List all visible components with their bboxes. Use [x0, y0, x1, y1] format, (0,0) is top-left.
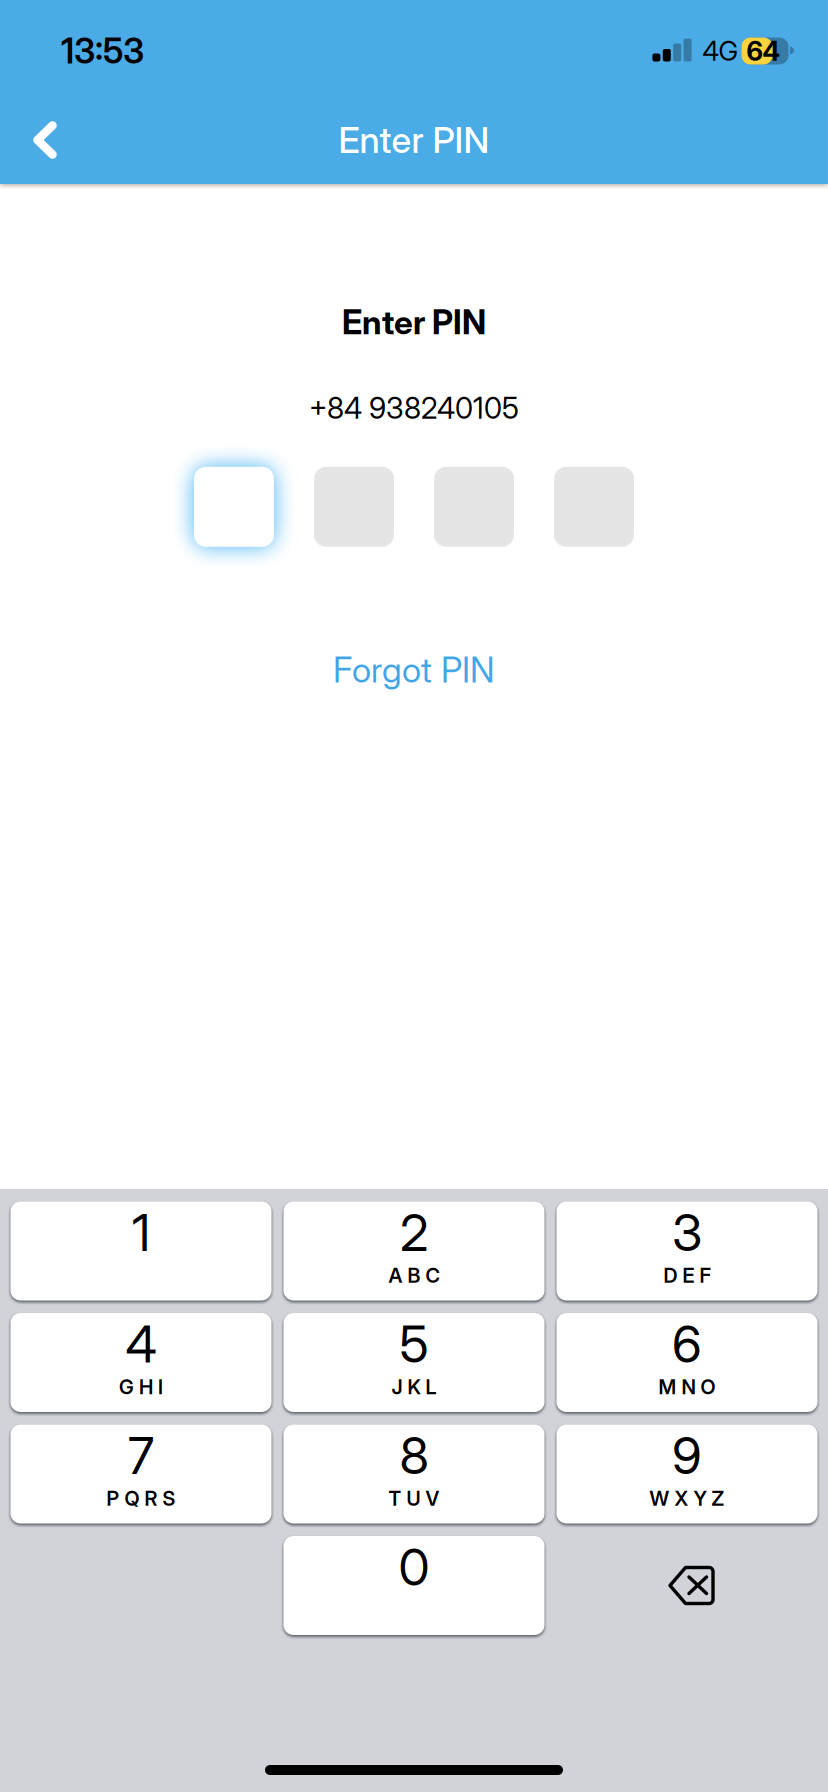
button[interactable]: Forgot PIN	[294, 648, 534, 692]
staticText: 4G	[702, 35, 737, 67]
button[interactable]: 0	[283, 1536, 544, 1635]
staticText: 7	[128, 1425, 154, 1486]
staticText: 5	[399, 1313, 428, 1375]
button[interactable]: Back	[0, 92, 90, 188]
staticText: 9	[672, 1425, 702, 1486]
staticText: 64	[746, 35, 780, 67]
button[interactable]: 6	[556, 1313, 817, 1412]
staticText: Forgot PIN	[333, 649, 495, 691]
staticText: P Q R S	[106, 1486, 175, 1510]
staticText: +84 938240105	[309, 390, 519, 426]
button[interactable]: 8	[283, 1424, 544, 1523]
staticText: D E F	[663, 1263, 710, 1287]
button[interactable]: Delete	[556, 1536, 817, 1635]
staticText: 8	[399, 1425, 428, 1486]
button[interactable]: 3	[556, 1201, 817, 1300]
staticText: T U V	[388, 1486, 439, 1510]
button[interactable]: 5	[283, 1313, 544, 1412]
staticText: J K L	[391, 1375, 436, 1399]
button[interactable]: 1	[10, 1201, 271, 1300]
staticText: 2	[400, 1202, 428, 1263]
button[interactable]: 9	[556, 1424, 817, 1523]
button[interactable]: 4	[10, 1313, 271, 1412]
staticText: Enter PIN	[342, 302, 486, 342]
staticText: Enter PIN	[338, 118, 489, 162]
staticText: 6	[672, 1313, 702, 1375]
button[interactable]: 2	[283, 1201, 544, 1300]
button[interactable]: 7	[10, 1424, 271, 1523]
staticText: 4	[125, 1313, 156, 1375]
staticText: 1	[132, 1202, 150, 1263]
staticText: G H I	[119, 1375, 163, 1399]
staticText: A B C	[388, 1263, 439, 1287]
staticText: W X Y Z	[649, 1486, 724, 1510]
staticText: 0	[398, 1536, 429, 1598]
staticText: 3	[672, 1202, 702, 1263]
staticText: 13:53	[61, 30, 144, 72]
staticText: M N O	[658, 1375, 715, 1399]
